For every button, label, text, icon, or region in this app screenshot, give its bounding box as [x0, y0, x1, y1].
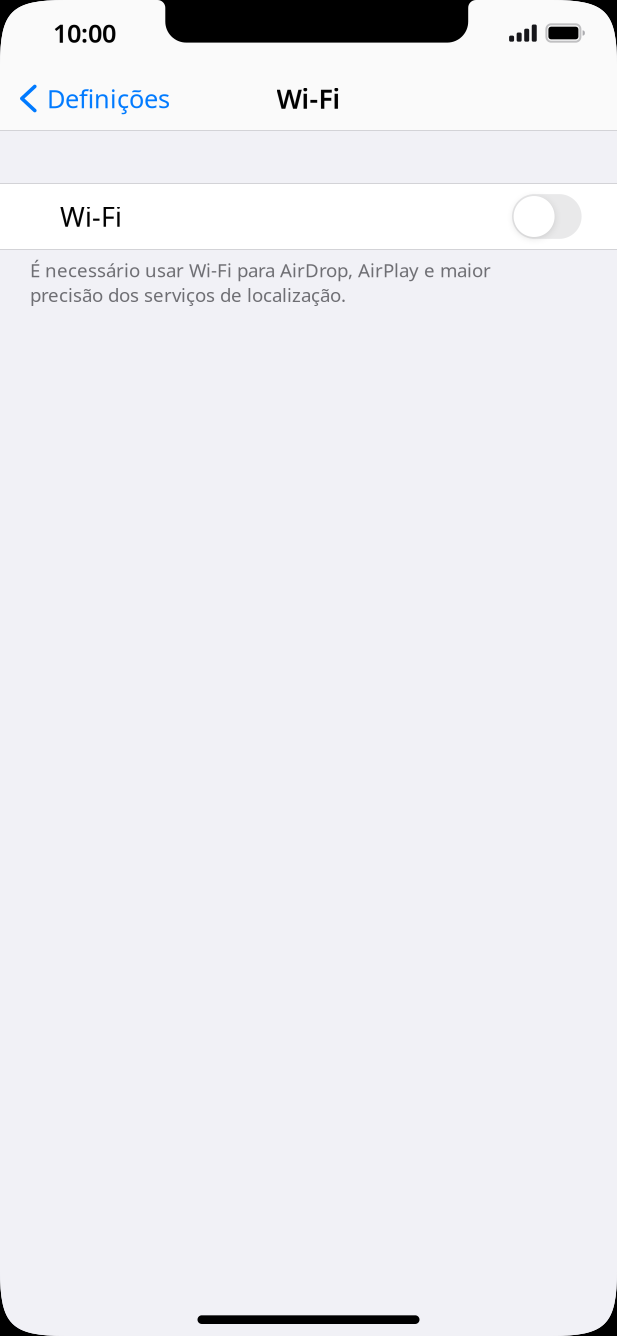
- staticText: Wi-Fi: [276, 81, 340, 116]
- staticText: Definições: [47, 82, 170, 115]
- staticText: É necessário usar Wi-Fi para AirDrop, Ai…: [30, 257, 491, 307]
- button[interactable]: Wi-Fi: [0, 184, 617, 249]
- staticText: 10:00: [53, 16, 116, 50]
- staticText: Wi-Fi: [60, 199, 122, 234]
- button[interactable]: Definições: [0, 72, 184, 125]
